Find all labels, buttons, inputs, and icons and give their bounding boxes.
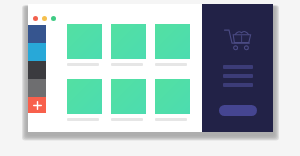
button[interactable]: Minimize window	[42, 16, 47, 21]
button[interactable]	[155, 79, 190, 121]
button[interactable]	[155, 24, 190, 66]
button[interactable]: Maximize window	[51, 16, 56, 21]
button[interactable]: Close window	[33, 16, 38, 21]
button[interactable]	[111, 24, 146, 66]
button[interactable]	[67, 24, 102, 66]
button[interactable]	[111, 79, 146, 121]
button[interactable]: Add new item	[28, 97, 46, 113]
button[interactable]	[67, 79, 102, 121]
button[interactable]: Checkout	[219, 105, 257, 116]
button[interactable]: Shopping cart	[223, 27, 253, 53]
